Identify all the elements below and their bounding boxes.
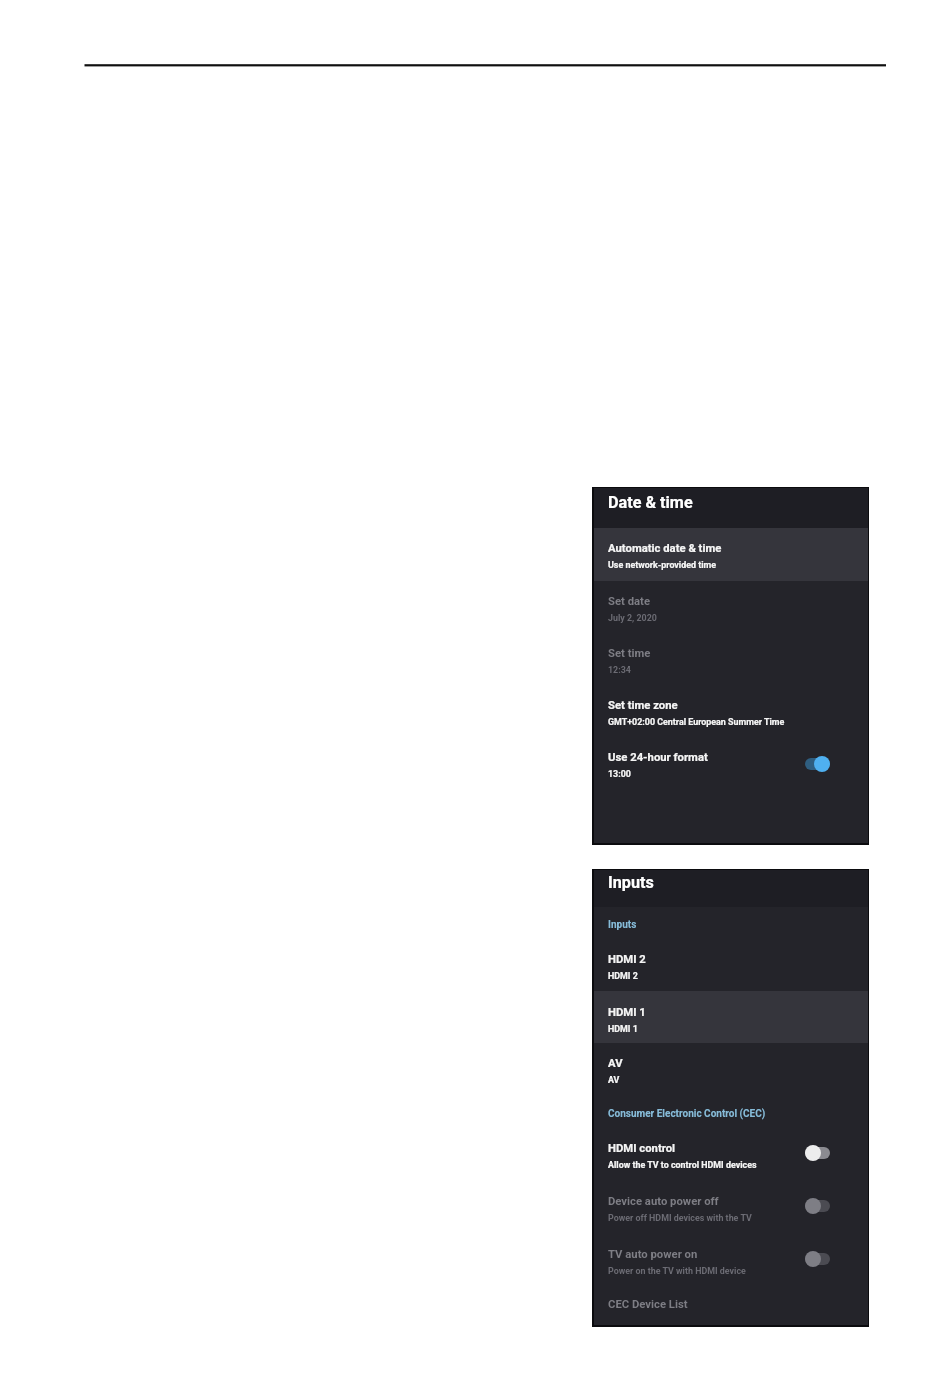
button[interactable]: Set time zone: [594, 685, 868, 737]
button[interactable]: HDMI control: [805, 1144, 830, 1162]
button[interactable]: HDMI 2: [594, 941, 868, 991]
button[interactable]: Device auto power off: [805, 1197, 830, 1215]
staticText: 12:34: [608, 665, 631, 675]
staticText: CEC Device List: [608, 1298, 688, 1311]
button[interactable]: Device auto power off: [594, 1183, 868, 1236]
button[interactable]: Automatic date & time: [594, 528, 868, 581]
staticText: Set date: [608, 595, 651, 608]
button[interactable]: Set date: [594, 581, 868, 633]
button[interactable]: Use 24-hour format: [805, 755, 830, 773]
staticText: Set time zone: [608, 699, 678, 712]
staticText: HDMI control: [608, 1142, 676, 1155]
staticText: Date & time: [608, 493, 693, 512]
staticText: HDMI 2: [608, 953, 646, 966]
button[interactable]: HDMI 1: [594, 991, 868, 1043]
button[interactable]: AV: [594, 1043, 868, 1095]
button[interactable]: TV auto power on: [805, 1250, 830, 1268]
staticText: Consumer Electronic Control (CEC): [608, 1108, 766, 1120]
staticText: TV auto power on: [608, 1248, 698, 1261]
button[interactable]: TV auto power on: [594, 1236, 868, 1289]
staticText: AV: [608, 1057, 623, 1070]
button[interactable]: Use 24-hour format: [594, 737, 868, 789]
staticText: Use network-provided time: [608, 560, 717, 570]
button[interactable]: CEC Device List: [594, 1289, 868, 1327]
staticText: Use 24-hour format: [608, 751, 708, 764]
staticText: Allow the TV to control HDMI devices: [608, 1160, 757, 1170]
staticText: HDMI 1: [608, 1006, 646, 1019]
staticText: July 2, 2020: [608, 613, 657, 623]
staticText: Power off HDMI devices with the TV: [608, 1213, 752, 1223]
staticText: Device auto power off: [608, 1195, 719, 1208]
staticText: HDMI 2: [608, 971, 638, 981]
staticText: Automatic date & time: [608, 542, 722, 555]
staticText: Inputs: [608, 919, 637, 931]
staticText: 13:00: [608, 769, 631, 779]
button[interactable]: HDMI control: [594, 1130, 868, 1183]
staticText: GMT+02:00 Central European Summer Time: [608, 717, 785, 727]
button[interactable]: Set time: [594, 633, 868, 685]
staticText: Power on the TV with HDMI device: [608, 1266, 746, 1276]
staticText: Set time: [608, 647, 651, 660]
staticText: Inputs: [608, 873, 654, 892]
staticText: HDMI 1: [608, 1024, 638, 1034]
staticText: AV: [608, 1075, 620, 1085]
